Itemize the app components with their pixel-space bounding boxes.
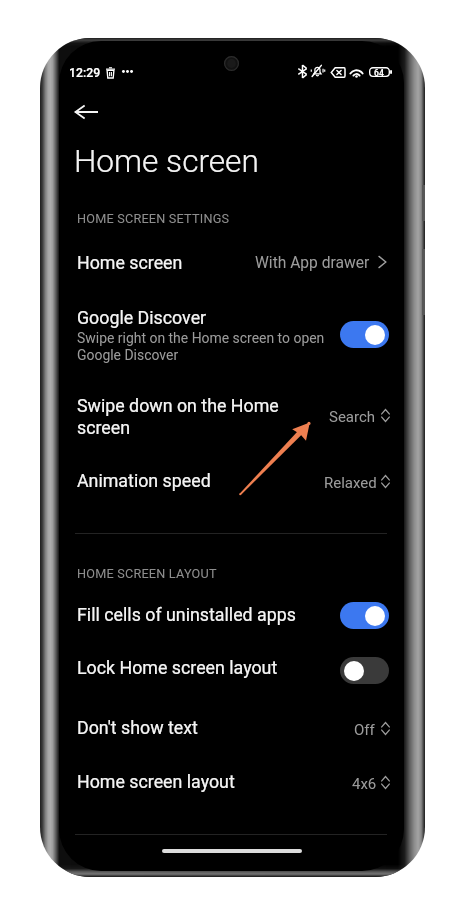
button[interactable] — [59, 648, 404, 692]
staticText: Animation speed — [77, 470, 211, 491]
button[interactable] — [59, 464, 404, 508]
staticText: Lock Home screen layout — [77, 657, 278, 678]
staticText: Fill cells of uninstalled apps — [77, 604, 296, 625]
button[interactable]: Google Discover toggle — [296, 296, 404, 358]
staticText: Relaxed — [324, 474, 377, 492]
staticText: Don't show text — [77, 717, 198, 738]
staticText: Home screen — [74, 143, 259, 180]
staticText: Swipe down on the Home — [77, 395, 279, 416]
staticText: Off — [354, 721, 375, 739]
staticText: Home screen — [77, 252, 183, 273]
button[interactable]: Toggle off — [340, 657, 389, 684]
button[interactable] — [59, 384, 404, 440]
staticText: 12:29 — [69, 66, 101, 80]
staticText: screen — [77, 417, 131, 438]
staticText: HOME SCREEN SETTINGS — [77, 211, 230, 226]
button[interactable] — [59, 592, 404, 636]
staticText: Search — [329, 408, 376, 426]
button[interactable]: Back — [64, 90, 108, 134]
button[interactable] — [59, 236, 404, 284]
staticText: 64 — [374, 68, 384, 78]
staticText: Swipe right on the Home screen to open — [77, 330, 325, 346]
staticText: Google Discover — [77, 347, 179, 363]
staticText: Home screen layout — [77, 771, 235, 792]
staticText: 4x6 — [352, 775, 377, 793]
button[interactable] — [59, 708, 404, 752]
staticText: Google Discover — [77, 307, 207, 328]
staticText: With App drawer — [255, 254, 370, 272]
button[interactable] — [59, 762, 404, 806]
button[interactable]: Toggle on — [340, 602, 389, 629]
button[interactable]: Toggle on — [340, 321, 389, 348]
staticText: HOME SCREEN LAYOUT — [77, 566, 217, 581]
